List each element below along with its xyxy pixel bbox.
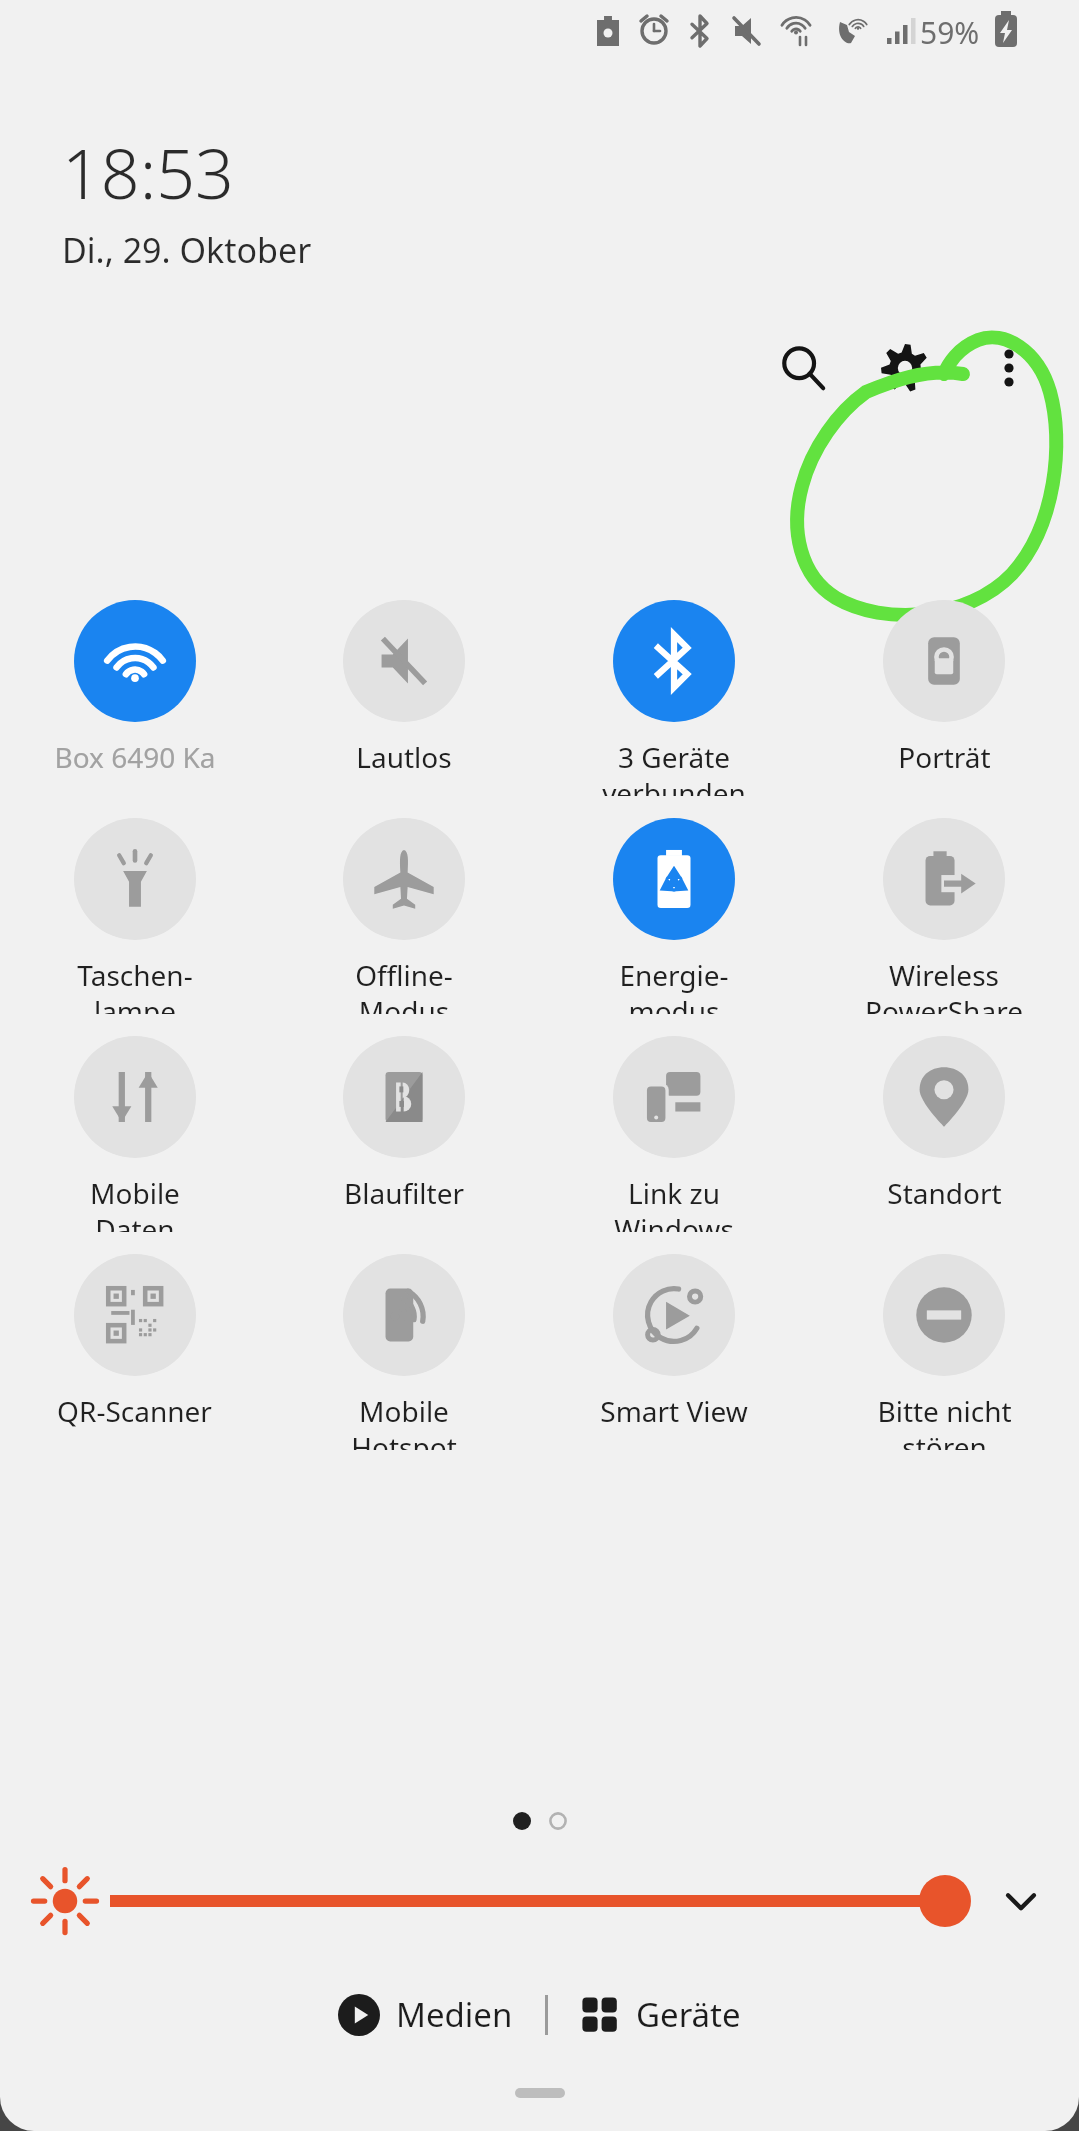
- button[interactable]: Bitte nicht stören: [809, 1254, 1079, 1450]
- button[interactable]: [549, 1812, 567, 1830]
- staticText: Standort: [887, 1174, 1002, 1212]
- button[interactable]: Taschen- lampe: [0, 818, 269, 1014]
- button[interactable]: Link zu Windows: [539, 1036, 809, 1232]
- staticText: 3 Geräte verbunden: [602, 738, 746, 796]
- button[interactable]: Mobile Daten: [0, 1036, 269, 1232]
- staticText: 59%: [920, 12, 980, 53]
- button[interactable]: Porträt: [809, 600, 1079, 796]
- button[interactable]: Wireless PowerShare: [809, 818, 1079, 1014]
- staticText: Porträt: [898, 738, 991, 776]
- staticText: Offline- Modus: [355, 956, 453, 1014]
- staticText: Taschen- lampe: [77, 956, 193, 1014]
- staticText: Link zu Windows: [614, 1174, 734, 1232]
- staticText: Geräte: [636, 1992, 741, 2037]
- button[interactable]: Suchen: [755, 320, 851, 416]
- staticText: Box 6490 Ka: [54, 738, 216, 776]
- staticText: Mobile Daten: [90, 1174, 180, 1232]
- button[interactable]: Mobile Hotspot: [269, 1254, 539, 1450]
- staticText: Medien: [396, 1992, 513, 2037]
- button[interactable]: [513, 1812, 531, 1830]
- staticText: Mobile Hotspot: [351, 1392, 457, 1450]
- button[interactable]: Lautlos: [269, 600, 539, 796]
- button[interactable]: Geräte: [570, 1982, 751, 2047]
- button[interactable]: Smart View: [539, 1254, 809, 1450]
- button[interactable]: Medien: [328, 1982, 523, 2047]
- button[interactable]: Erweitern: [987, 1867, 1055, 1935]
- button[interactable]: Energie- modus: [539, 818, 809, 1014]
- button[interactable]: Offline- Modus: [269, 818, 539, 1014]
- button[interactable]: Einstellungen: [857, 320, 953, 416]
- staticText: 18:53: [62, 126, 234, 219]
- staticText: QR-Scanner: [57, 1392, 212, 1430]
- staticText: Bitte nicht stören: [877, 1392, 1012, 1450]
- staticText: Lautlos: [356, 738, 452, 776]
- button[interactable]: [110, 1869, 971, 1933]
- staticText: Di., 29. Oktober: [62, 227, 312, 273]
- staticText: Wireless PowerShare: [865, 956, 1023, 1014]
- button[interactable]: Standort: [809, 1036, 1079, 1232]
- button[interactable]: 3 Geräte verbunden: [539, 600, 809, 796]
- staticText: Energie- modus: [619, 956, 729, 1014]
- staticText: Smart View: [600, 1392, 748, 1430]
- button[interactable]: QR-Scanner: [0, 1254, 269, 1450]
- button[interactable]: Blaufilter: [269, 1036, 539, 1232]
- staticText: Blaufilter: [344, 1174, 464, 1212]
- button[interactable]: Box 6490 Ka: [0, 600, 269, 796]
- button[interactable]: Helligkeit: [26, 1862, 104, 1940]
- button[interactable]: Weitere Optionen: [961, 320, 1057, 416]
